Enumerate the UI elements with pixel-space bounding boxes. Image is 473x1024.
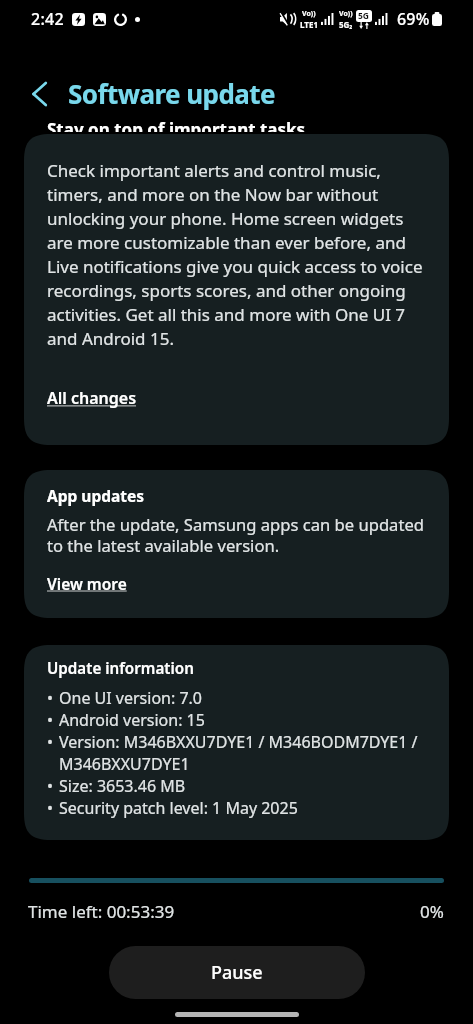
staticText: • xyxy=(47,731,54,753)
staticText: Android version: 15 xyxy=(59,709,205,731)
staticText: Time left: 00:53:39 xyxy=(28,900,175,923)
staticText: • xyxy=(47,797,54,819)
button[interactable]: Pause xyxy=(109,946,365,999)
staticText: Check important alerts and control music… xyxy=(47,159,426,350)
staticText: Vo)) xyxy=(339,9,353,19)
staticText: Security patch level: 1 May 2025 xyxy=(59,797,298,819)
staticText: Size: 3653.46 MB xyxy=(59,775,186,797)
staticText: All changes xyxy=(47,387,137,409)
staticText: App updates xyxy=(47,485,145,506)
staticText: After the update, Samsung apps can be up… xyxy=(47,513,426,557)
button[interactable]: Update information xyxy=(24,645,449,840)
staticText: LTE1 xyxy=(300,19,318,30)
staticText: 5G₂ xyxy=(339,19,353,30)
staticText: View more xyxy=(47,573,127,594)
staticText: • xyxy=(47,775,54,797)
staticText: 2:42 xyxy=(31,8,65,30)
staticText: Pause xyxy=(211,960,263,985)
staticText: 0% xyxy=(420,900,444,923)
staticText: Update information xyxy=(47,658,194,679)
staticText: Vo)) xyxy=(302,9,316,19)
staticText: • xyxy=(47,709,54,731)
button[interactable]: App updates xyxy=(24,470,449,618)
staticText: Software update xyxy=(68,76,276,111)
button[interactable]: Check important alerts and control music… xyxy=(24,134,449,445)
staticText: Version: M346BXXU7DYE1 / M346BODM7DYE1 /… xyxy=(59,731,426,775)
staticText: 69% xyxy=(397,8,430,30)
staticText: 5G xyxy=(358,10,370,22)
staticText: One UI version: 7.0 xyxy=(59,687,203,709)
staticText: Stay on top of important tasks xyxy=(47,120,306,132)
staticText: • xyxy=(47,687,54,709)
button[interactable]: Back xyxy=(22,77,56,111)
